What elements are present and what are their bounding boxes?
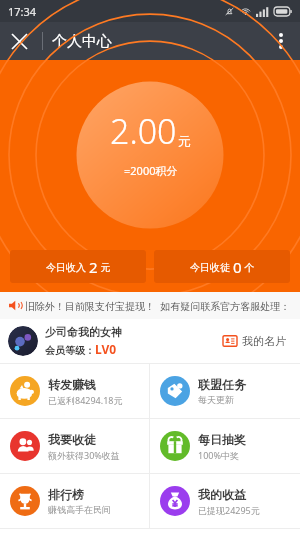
- staticText: LV0: [95, 341, 117, 357]
- staticText: 转发赚钱: [48, 377, 96, 392]
- staticText: =2000积分: [124, 163, 178, 178]
- staticText: 额外获得30%收益: [48, 449, 120, 461]
- button[interactable]: Close: [0, 22, 38, 60]
- button[interactable]: 我的收益: [150, 474, 300, 528]
- staticText: 2: [89, 257, 98, 277]
- staticText: 今日收入: [46, 260, 89, 274]
- staticText: 个: [242, 260, 255, 274]
- staticText: 我的名片: [242, 334, 286, 348]
- staticText: 已提现24295元: [198, 504, 260, 516]
- staticText: 会员等级：: [45, 344, 95, 357]
- staticText: 排行榜: [48, 487, 84, 502]
- staticText: 元: [98, 260, 111, 274]
- button[interactable]: 转发赚钱: [0, 364, 149, 418]
- button[interactable]: 今日收入: [10, 250, 146, 283]
- staticText: 2.00: [110, 108, 177, 154]
- button[interactable]: 我的名片: [223, 334, 286, 348]
- button[interactable]: 联盟任务: [150, 364, 300, 418]
- staticText: 每天更新: [198, 394, 234, 405]
- button[interactable]: More options: [262, 22, 300, 60]
- button[interactable]: 每日抽奖: [150, 419, 300, 473]
- staticText: 联盟任务: [198, 377, 246, 392]
- staticText: 旧除外！目前限支付宝提现！ 如有疑问联系官方客服处理：8001: [25, 299, 292, 313]
- staticText: 我要收徒: [48, 432, 96, 447]
- button[interactable]: 少司命我的女神: [8, 325, 122, 357]
- button[interactable]: 我要收徒: [0, 419, 149, 473]
- button[interactable]: 旧除外！目前限支付宝提现！ 如有疑问联系官方客服处理：8001: [8, 292, 292, 319]
- staticText: 已返利84294.18元: [48, 394, 123, 406]
- staticText: 赚钱高手在民间: [48, 504, 111, 515]
- staticText: 元: [178, 133, 191, 149]
- staticText: 每日抽奖: [198, 432, 246, 447]
- button[interactable]: 排行榜: [0, 474, 149, 528]
- staticText: 我的收益: [198, 487, 246, 502]
- staticText: 今日收徒: [190, 260, 233, 274]
- staticText: 17:34: [8, 4, 37, 19]
- staticText: 少司命我的女神: [45, 325, 122, 339]
- staticText: 0: [233, 257, 242, 277]
- staticText: 100%中奖: [198, 449, 239, 461]
- button[interactable]: 今日收徒: [154, 250, 290, 283]
- staticText: 个人中心: [52, 32, 112, 51]
